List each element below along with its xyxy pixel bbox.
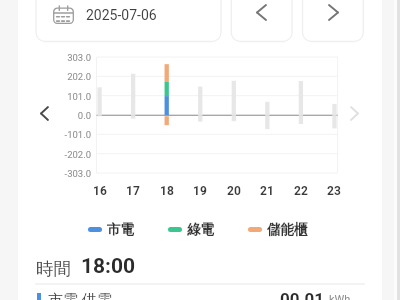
staticText: 17 — [126, 184, 140, 198]
button[interactable]: 2025-07-06 — [36, 0, 221, 42]
staticText: 101.0 — [67, 91, 91, 102]
button[interactable]: Previous day — [231, 0, 292, 42]
staticText: kWh — [329, 293, 351, 300]
button[interactable]: Next range — [345, 102, 363, 124]
staticText: 202.0 — [67, 71, 91, 82]
button[interactable]: Next day — [303, 0, 364, 42]
staticText: 23 — [327, 184, 341, 198]
staticText: 18:00 — [81, 254, 136, 279]
button[interactable]: 儲能櫃 — [248, 221, 308, 238]
staticText: 市電 — [107, 221, 134, 238]
staticText: 儲能櫃 — [267, 221, 308, 238]
staticText: 20 — [227, 184, 241, 198]
staticText: -303.0 — [64, 168, 91, 179]
staticText: -202.0 — [64, 149, 91, 160]
staticText: 綠電 — [187, 221, 214, 238]
staticText: 2025-07-06 — [86, 7, 157, 23]
staticText: 00.01 — [280, 289, 324, 300]
button[interactable]: 綠電 — [168, 221, 214, 238]
staticText: 16 — [93, 184, 107, 198]
button[interactable]: 市電 — [88, 221, 134, 238]
staticText: 303.0 — [67, 52, 91, 63]
staticText: 18 — [160, 184, 174, 198]
staticText: 22 — [294, 184, 308, 198]
staticText: -101.0 — [64, 129, 91, 140]
staticText: 0.0 — [77, 110, 91, 121]
staticText: 時間 — [36, 258, 71, 280]
staticText: 21 — [260, 184, 274, 198]
button[interactable]: Previous range — [35, 102, 53, 124]
staticText: 市電 供電 — [48, 289, 112, 300]
staticText: 19 — [193, 184, 207, 198]
